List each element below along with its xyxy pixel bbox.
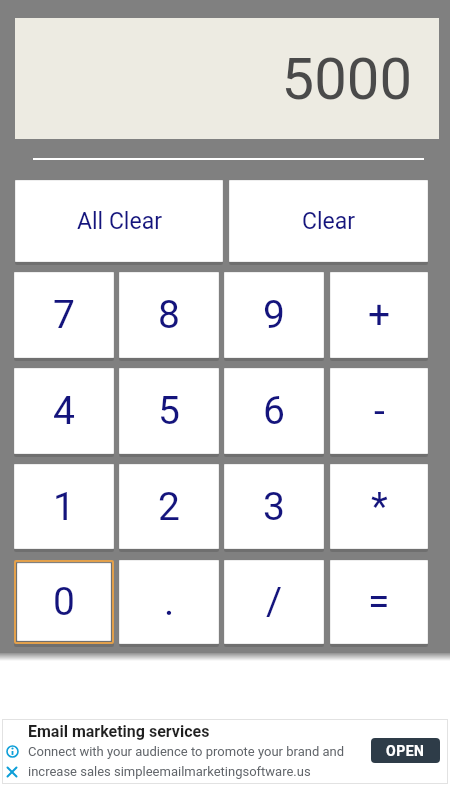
button[interactable]: 9 — [224, 272, 324, 358]
staticText: - — [374, 388, 385, 434]
button[interactable]: 4 — [14, 368, 114, 454]
button[interactable]: 8 — [119, 272, 219, 358]
staticText: 8 — [158, 292, 180, 338]
staticText: 5000 — [281, 45, 412, 113]
button[interactable]: Email marketing services — [2, 719, 448, 784]
staticText: . — [164, 579, 175, 625]
button[interactable]: = — [330, 560, 428, 644]
staticText: / — [266, 579, 283, 625]
button[interactable]: 3 — [224, 464, 324, 549]
staticText: Connect with your audience to promote yo… — [28, 744, 345, 779]
button[interactable]: 2 — [119, 464, 219, 549]
staticText: = — [368, 579, 390, 625]
button[interactable]: + — [330, 272, 428, 358]
staticText: * — [371, 484, 388, 530]
staticText: OPEN — [386, 743, 425, 759]
button[interactable]: All Clear — [15, 180, 223, 262]
button[interactable]: * — [330, 464, 428, 549]
button[interactable]: 6 — [224, 368, 324, 454]
staticText: + — [368, 292, 391, 338]
staticText: 0 — [53, 579, 75, 625]
button[interactable]: / — [224, 560, 324, 644]
button[interactable]: 5000 — [15, 18, 439, 139]
staticText: 3 — [263, 484, 285, 530]
staticText: 9 — [263, 292, 285, 338]
button[interactable]: 1 — [14, 464, 114, 549]
staticText: 4 — [53, 388, 75, 434]
staticText: All Clear — [77, 208, 162, 235]
staticText: 6 — [263, 388, 285, 434]
staticText: 1 — [53, 484, 75, 530]
button[interactable]: 0 — [17, 563, 111, 641]
button[interactable]: 5 — [119, 368, 219, 454]
button[interactable]: Clear — [229, 180, 428, 262]
staticText: Email marketing services — [28, 722, 210, 741]
button[interactable]: - — [330, 368, 428, 454]
staticText: 7 — [53, 292, 75, 338]
button[interactable]: 7 — [14, 272, 114, 358]
button[interactable]: OPEN — [371, 738, 440, 763]
staticText: Clear — [302, 208, 356, 235]
staticText: 2 — [158, 484, 180, 530]
staticText: 5 — [158, 388, 180, 434]
button[interactable]: . — [119, 560, 219, 644]
